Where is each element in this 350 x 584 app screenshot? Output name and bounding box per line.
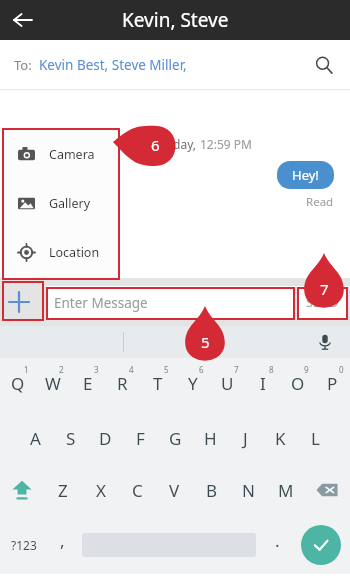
button[interactable]: Y <box>175 358 210 412</box>
staticText: 12:59 PM <box>200 136 252 152</box>
staticText: 6 <box>151 135 160 155</box>
button[interactable]: K <box>263 412 298 464</box>
button[interactable]: Add attachment <box>0 278 38 326</box>
staticText: Z <box>58 479 68 502</box>
staticText: L <box>311 427 320 450</box>
button[interactable]: B <box>193 464 230 516</box>
staticText: C <box>132 479 143 502</box>
staticText: 5 <box>201 332 210 352</box>
button[interactable]: Enter <box>301 525 341 565</box>
button[interactable]: U <box>210 358 245 412</box>
button[interactable]: X <box>82 464 119 516</box>
staticText: 2 <box>59 364 64 375</box>
button[interactable]: . <box>262 516 292 574</box>
staticText: 6 <box>199 364 204 375</box>
staticText: Y <box>188 372 198 395</box>
button[interactable]: ?123 <box>0 516 48 574</box>
staticText: M <box>278 479 294 502</box>
staticText: Location <box>49 244 100 261</box>
staticText: G <box>169 427 182 450</box>
button[interactable]: Hey! <box>277 161 334 189</box>
button[interactable]: Gallery <box>4 179 118 228</box>
staticText: ?123 <box>11 537 37 553</box>
staticText: B <box>206 479 218 502</box>
button[interactable]: Location <box>4 228 118 277</box>
button[interactable]: Back <box>6 3 40 37</box>
staticText: 9 <box>304 364 309 375</box>
button[interactable]: SEND <box>297 286 348 319</box>
staticText: Camera <box>49 146 95 163</box>
button[interactable]: , <box>48 516 76 574</box>
staticText: . <box>275 529 280 552</box>
staticText: Kevin Best, Steve Miller, <box>39 56 187 74</box>
button[interactable]: Q <box>0 358 35 412</box>
button[interactable]: Camera <box>4 130 118 179</box>
button[interactable]: T <box>140 358 175 412</box>
button[interactable]: H <box>193 412 228 464</box>
staticText: V <box>169 479 180 502</box>
button[interactable]: L <box>298 412 333 464</box>
button[interactable]: R <box>105 358 140 412</box>
staticText: H <box>204 427 217 450</box>
staticText: F <box>136 427 145 450</box>
staticText: U <box>221 372 234 395</box>
staticText: Read <box>306 194 334 210</box>
staticText: SEND <box>306 294 339 311</box>
button[interactable]: C <box>119 464 156 516</box>
staticText: A <box>30 427 41 450</box>
staticText: Enter Message <box>54 294 148 312</box>
staticText: T <box>153 372 163 395</box>
staticText: Q <box>11 372 25 395</box>
button[interactable]: E <box>70 358 105 412</box>
staticText: 4 <box>129 364 134 375</box>
button[interactable]: Shift <box>0 464 44 516</box>
staticText: K <box>275 427 286 450</box>
button[interactable]: Backspace <box>304 464 350 516</box>
staticText: O <box>291 372 305 395</box>
button[interactable]: I <box>245 358 280 412</box>
staticText: D <box>99 427 112 450</box>
staticText: Hey! <box>292 166 319 184</box>
button[interactable]: Enter Message <box>46 286 295 319</box>
button[interactable]: O <box>280 358 315 412</box>
staticText: X <box>96 479 106 502</box>
staticText: 5 <box>164 364 169 375</box>
staticText: 0 <box>339 364 344 375</box>
button[interactable]: J <box>228 412 263 464</box>
staticText: Kevin, Steve <box>122 7 229 33</box>
button[interactable]: P <box>315 358 350 412</box>
staticText: N <box>242 479 255 502</box>
button[interactable]: Search <box>308 49 340 81</box>
staticText: 3 <box>94 364 99 375</box>
staticText: To: <box>14 56 32 74</box>
staticText: P <box>327 372 338 395</box>
button[interactable]: N <box>230 464 267 516</box>
staticText: 7 <box>234 364 239 375</box>
button[interactable]: V <box>156 464 193 516</box>
button[interactable]: Voice input <box>312 329 338 355</box>
staticText: , <box>60 529 65 552</box>
button[interactable]: Z <box>44 464 82 516</box>
button[interactable]: F <box>123 412 158 464</box>
button[interactable]: To: <box>0 40 350 90</box>
button[interactable]: M <box>267 464 304 516</box>
button[interactable]: A <box>17 412 53 464</box>
staticText: J <box>243 427 248 450</box>
staticText: R <box>117 372 128 395</box>
staticText: E <box>83 372 93 395</box>
staticText: Gallery <box>49 195 91 212</box>
staticText: 8 <box>269 364 274 375</box>
button[interactable]: D <box>88 412 123 464</box>
button[interactable]: S <box>53 412 88 464</box>
staticText: Today, <box>160 136 200 152</box>
staticText: S <box>66 427 76 450</box>
staticText: 1 <box>24 364 29 375</box>
staticText: W <box>45 372 61 395</box>
button[interactable]: W <box>35 358 70 412</box>
staticText: I <box>260 372 266 395</box>
staticText: 7 <box>320 279 329 299</box>
button[interactable]: G <box>158 412 193 464</box>
